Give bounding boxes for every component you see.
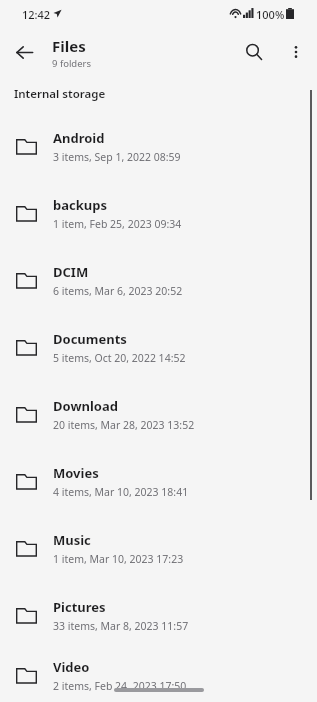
button[interactable]: Movies [0, 448, 317, 515]
staticText: 1 item, Mar 10, 2023 17:23 [53, 552, 184, 566]
staticText: 20 items, Mar 28, 2023 13:52 [53, 418, 195, 432]
staticText: DCIM [53, 263, 89, 281]
staticText: Video [53, 658, 90, 676]
staticText: 100% [256, 7, 285, 22]
button[interactable]: backups [0, 180, 317, 247]
button[interactable]: Android [0, 113, 317, 180]
button[interactable]: Music [0, 515, 317, 582]
staticText: 6 items, Mar 6, 2023 20:52 [53, 284, 183, 298]
staticText: 2 items, Feb 24, 2023 17:50 [53, 679, 187, 693]
staticText: Download [53, 397, 118, 415]
button[interactable]: Documents [0, 314, 317, 381]
staticText: 5 items, Oct 20, 2022 14:52 [53, 351, 186, 365]
staticText: 3 items, Sep 1, 2022 08:59 [53, 150, 181, 164]
staticText: Files [52, 36, 86, 56]
staticText: Pictures [53, 598, 106, 616]
staticText: 12:42 [22, 7, 51, 22]
button[interactable]: DCIM [0, 247, 317, 314]
staticText: 9 folders [52, 57, 92, 70]
button[interactable]: Video [0, 649, 317, 702]
staticText: Documents [53, 330, 127, 348]
staticText: 1 item, Feb 25, 2023 09:34 [53, 217, 182, 231]
button[interactable]: More options [278, 34, 314, 70]
button[interactable]: Search [236, 34, 272, 70]
button[interactable]: Pictures [0, 582, 317, 649]
staticText: Android [53, 129, 105, 147]
staticText: 4 items, Mar 10, 2023 18:41 [53, 485, 189, 499]
staticText: Music [53, 531, 91, 549]
button[interactable]: Back [6, 34, 42, 70]
staticText: Internal storage [14, 86, 106, 102]
staticText: 33 items, Mar 8, 2023 11:57 [53, 619, 189, 633]
staticText: Movies [53, 464, 99, 482]
button[interactable]: Download [0, 381, 317, 448]
staticText: backups [53, 196, 107, 214]
